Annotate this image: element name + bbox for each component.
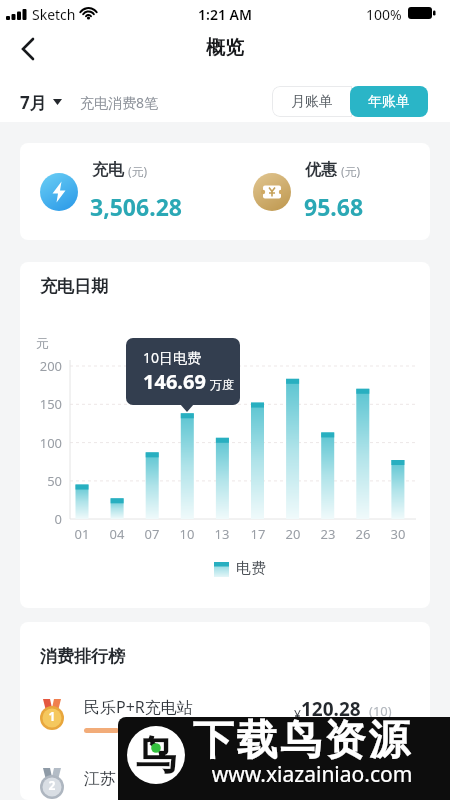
- staticText: (元): [341, 163, 361, 179]
- staticText: 01: [67, 525, 97, 543]
- staticText: 优惠: [305, 160, 337, 180]
- staticText: 20: [278, 525, 308, 543]
- staticText: 04: [102, 525, 132, 543]
- button[interactable]: 月账单: [272, 86, 352, 117]
- button[interactable]: [8, 32, 48, 66]
- staticText: 充电日期: [40, 276, 108, 297]
- staticText: 电费: [236, 559, 266, 578]
- staticText: 23: [313, 525, 343, 543]
- staticText: www.xiazainiao.com: [192, 760, 432, 789]
- button[interactable]: 年账单: [350, 86, 428, 117]
- staticText: Sketch: [32, 5, 76, 24]
- staticText: ¥: [294, 706, 301, 722]
- staticText: 100: [22, 434, 62, 452]
- button[interactable]: [20, 682, 430, 740]
- staticText: 月账单: [291, 93, 333, 111]
- staticText: 下载鸟资源: [191, 717, 411, 767]
- staticText: 鸟: [136, 730, 176, 780]
- staticText: 150: [22, 395, 62, 413]
- staticText: 概览: [0, 36, 450, 60]
- staticText: 2: [39, 777, 65, 793]
- staticText: 95.68: [304, 191, 364, 222]
- staticText: 万度: [210, 377, 234, 392]
- staticText: 26: [348, 525, 378, 543]
- staticText: 120.28: [301, 696, 361, 722]
- staticText: 200: [22, 357, 62, 375]
- staticText: 1:21 AM: [0, 5, 450, 24]
- staticText: 充电消费8笔: [80, 93, 159, 112]
- staticText: 13: [207, 525, 237, 543]
- staticText: 0: [22, 510, 62, 528]
- button[interactable]: 鸟: [118, 717, 450, 800]
- staticText: 07: [137, 525, 167, 543]
- staticText: 100%: [366, 5, 402, 24]
- staticText: 50: [22, 472, 62, 490]
- staticText: 17: [243, 525, 273, 543]
- staticText: (元): [128, 163, 148, 179]
- staticText: 元: [36, 335, 49, 351]
- staticText: 江苏: [84, 769, 116, 789]
- staticText: 30: [383, 525, 413, 543]
- staticText: 10: [172, 525, 202, 543]
- button[interactable]: 7月: [20, 86, 62, 118]
- staticText: 民乐P+R充电站: [84, 696, 193, 718]
- staticText: 充电: [92, 160, 124, 180]
- staticText: (10): [369, 702, 392, 720]
- staticText: 1: [39, 708, 65, 724]
- staticText: 消费排行榜: [40, 646, 125, 667]
- staticText: 7月: [20, 91, 47, 114]
- staticText: 146.69: [143, 368, 206, 395]
- staticText: 3,506.28: [90, 191, 182, 222]
- staticText: 10日电费: [143, 348, 202, 367]
- staticText: 年账单: [368, 93, 410, 111]
